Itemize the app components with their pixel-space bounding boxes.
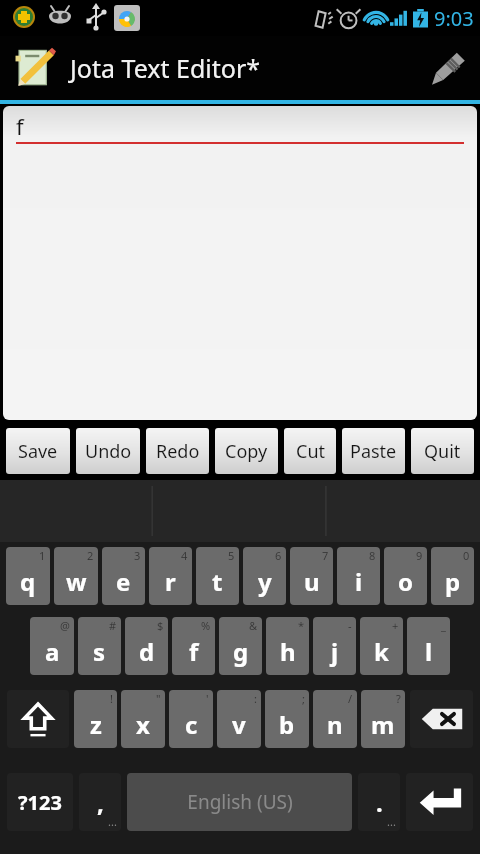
button[interactable]: ; [265, 690, 309, 748]
button[interactable]: Quit [411, 428, 474, 474]
staticText: Redo [156, 439, 200, 464]
staticText: , [97, 786, 104, 819]
button[interactable]: + [360, 617, 403, 675]
staticText: m [371, 708, 395, 741]
button[interactable]: * [266, 617, 309, 675]
staticText: Save [18, 439, 58, 464]
button[interactable]: Redo [146, 428, 209, 474]
staticText: Jota Text Editor* [70, 51, 416, 85]
staticText: g [233, 635, 249, 668]
staticText: $ [157, 618, 164, 633]
button[interactable]: " [121, 690, 165, 748]
button[interactable]: 9 [384, 547, 427, 605]
button[interactable]: 6 [243, 547, 286, 605]
button[interactable]: 4 [149, 547, 192, 605]
staticText: r [165, 565, 176, 598]
button[interactable]: Comma [79, 773, 121, 831]
button[interactable]: Undo [76, 428, 140, 474]
staticText: 9:03 [434, 5, 474, 32]
staticText: ... [387, 814, 396, 829]
button[interactable]: ? [361, 690, 405, 748]
staticText: i [355, 565, 363, 598]
button[interactable]: - [313, 617, 356, 675]
staticText: s [93, 635, 106, 668]
staticText: l [425, 635, 433, 668]
staticText: f [16, 111, 24, 141]
button[interactable]: f [3, 106, 477, 420]
staticText: x [136, 708, 150, 741]
staticText: v [232, 708, 246, 741]
button[interactable]: Period [358, 773, 400, 831]
staticText: u [304, 565, 320, 598]
staticText: 9 [416, 548, 423, 563]
button[interactable]: 8 [337, 547, 380, 605]
staticText: Paste [350, 439, 397, 464]
staticText: h [280, 635, 296, 668]
button[interactable]: Shift [7, 690, 69, 748]
staticText: b [279, 708, 295, 741]
staticText: ?123 [18, 789, 62, 816]
staticText: f [189, 635, 199, 668]
staticText: t [212, 565, 223, 598]
staticText: 0 [463, 548, 470, 563]
staticText: / [348, 691, 353, 706]
staticText: % [201, 618, 211, 633]
staticText: d [139, 635, 155, 668]
staticText: 6 [275, 548, 282, 563]
staticText: English (US) [187, 789, 293, 815]
button[interactable]: Copy [215, 428, 278, 474]
staticText: 2 [87, 548, 94, 563]
staticText: 5 [228, 548, 235, 563]
button[interactable]: & [219, 617, 262, 675]
button[interactable]: 5 [196, 547, 239, 605]
button[interactable]: 1 [6, 547, 50, 605]
staticText: Undo [85, 439, 132, 464]
button[interactable]: # [78, 617, 121, 675]
button[interactable]: Space [127, 773, 352, 831]
staticText: c [185, 708, 198, 741]
button[interactable]: Enter [406, 773, 473, 831]
staticText: ! [110, 691, 113, 706]
staticText: e [116, 565, 131, 598]
button[interactable]: $ [125, 617, 168, 675]
staticText: w [66, 565, 87, 598]
button[interactable]: / [313, 690, 357, 748]
staticText: k [374, 635, 389, 668]
button[interactable]: ' [169, 690, 213, 748]
staticText: q [20, 565, 36, 598]
staticText: Cut [296, 439, 325, 464]
staticText: # [109, 618, 117, 633]
staticText: a [45, 635, 60, 668]
button[interactable]: Paste [342, 428, 405, 474]
staticText: ... [108, 814, 117, 829]
button[interactable]: : [217, 690, 261, 748]
staticText: * [298, 618, 305, 633]
button[interactable]: Backspace [410, 690, 473, 748]
button[interactable]: Save [6, 428, 70, 474]
staticText: Copy [225, 439, 268, 464]
staticText: : [254, 691, 257, 706]
staticText: 7 [322, 548, 329, 563]
staticText: @ [60, 618, 70, 633]
button[interactable]: Cut [284, 428, 336, 474]
staticText: ; [302, 691, 305, 706]
button[interactable]: Edit [416, 36, 480, 100]
button[interactable]: 2 [54, 547, 98, 605]
staticText: " [156, 691, 161, 706]
staticText: ' [206, 691, 209, 706]
button[interactable]: _ [407, 617, 450, 675]
staticText: ? [396, 691, 401, 706]
button[interactable]: Symbols [7, 773, 73, 831]
button[interactable]: ! [74, 690, 117, 748]
staticText: - [348, 618, 352, 633]
staticText: . [376, 786, 383, 819]
staticText: 3 [134, 548, 141, 563]
button[interactable]: @ [30, 617, 74, 675]
button[interactable]: 3 [102, 547, 145, 605]
staticText: j [331, 635, 339, 668]
staticText: + [392, 618, 399, 633]
button[interactable]: 0 [431, 547, 474, 605]
button[interactable]: % [172, 617, 215, 675]
button[interactable]: 7 [290, 547, 333, 605]
staticText: z [90, 708, 102, 741]
